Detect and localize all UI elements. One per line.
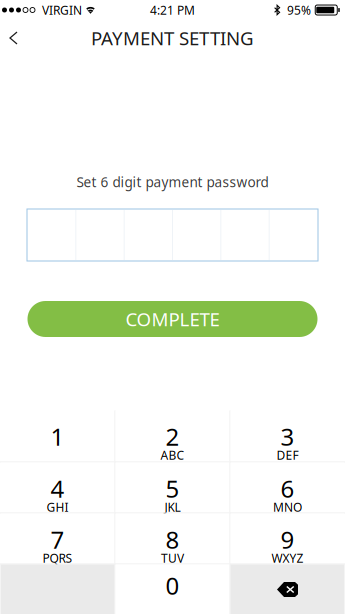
staticText: 5	[165, 473, 179, 504]
button[interactable]: 0	[115, 564, 229, 614]
staticText: TUV	[161, 550, 184, 566]
button[interactable]: 1	[0, 410, 114, 461]
staticText: Set 6 digit payment password	[76, 173, 268, 191]
staticText: JKL	[164, 499, 180, 515]
button[interactable]: 7	[0, 513, 114, 563]
staticText: GHI	[46, 499, 68, 515]
staticText: ABC	[160, 447, 184, 463]
staticText: 7	[50, 524, 64, 555]
staticText: 8	[165, 524, 179, 555]
button[interactable]: Back	[0, 20, 27, 56]
staticText: WXYZ	[271, 550, 303, 566]
button[interactable]: COMPLETE	[27, 301, 317, 337]
button[interactable]: 6	[230, 462, 344, 512]
staticText: VIRGIN	[42, 2, 82, 18]
button[interactable]: 2	[115, 410, 229, 461]
button[interactable]: 4	[0, 462, 114, 512]
button[interactable]: 9	[230, 513, 344, 563]
staticText: PQRS	[42, 550, 72, 566]
staticText: MNO	[273, 499, 302, 515]
button[interactable]: 8	[115, 513, 229, 563]
staticText: 2	[165, 421, 179, 452]
button[interactable]: 3	[230, 410, 344, 461]
staticText: 6	[280, 473, 294, 504]
staticText: 0	[165, 570, 179, 601]
staticText: 95%	[287, 2, 311, 18]
staticText: DEF	[276, 447, 298, 463]
button[interactable]: Delete	[230, 564, 344, 614]
button[interactable]: 5	[115, 462, 229, 512]
staticText: 3	[280, 421, 294, 452]
staticText: 4	[50, 473, 64, 504]
staticText: COMPLETE	[125, 307, 219, 331]
staticText: 1	[50, 421, 64, 452]
staticText: PAYMENT SETTING	[91, 26, 254, 50]
staticText: 4:21 PM	[150, 2, 195, 18]
staticText: 9	[280, 524, 294, 555]
